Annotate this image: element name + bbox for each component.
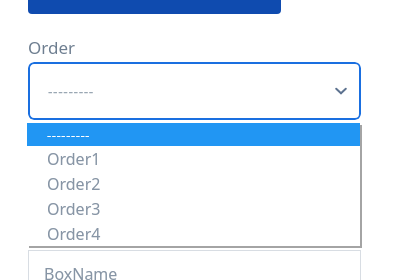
button[interactable]: --------- bbox=[27, 123, 360, 146]
button[interactable]: Order4 bbox=[27, 221, 360, 246]
staticText: Order4 bbox=[47, 223, 101, 245]
button[interactable]: Order3 bbox=[27, 196, 360, 221]
staticText: --------- bbox=[47, 126, 91, 144]
button[interactable]: Order2 bbox=[27, 171, 360, 196]
other: Open dropdown bbox=[333, 83, 349, 99]
button[interactable]: Order1 bbox=[27, 146, 360, 171]
staticText: Order2 bbox=[47, 173, 101, 195]
staticText: BoxName bbox=[44, 263, 118, 280]
staticText: Order1 bbox=[47, 148, 101, 170]
button[interactable] bbox=[28, 0, 281, 14]
staticText: Order3 bbox=[47, 198, 101, 220]
staticText: --------- bbox=[48, 82, 94, 101]
staticText: Order bbox=[28, 36, 76, 59]
button[interactable]: --------- bbox=[28, 62, 361, 120]
